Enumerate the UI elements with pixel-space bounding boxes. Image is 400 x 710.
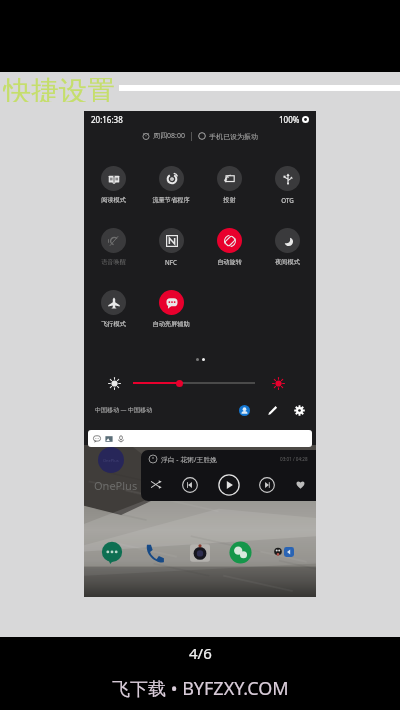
staticText: 中国移动 — 中国移动 (95, 406, 153, 414)
staticText: 投射 (223, 196, 236, 204)
staticText: 语音唤醒 (101, 258, 126, 266)
staticText: OnePlus (103, 458, 119, 463)
button[interactable]: 飞行模式 (84, 290, 142, 352)
button[interactable]: 自动旋转 (200, 228, 258, 290)
button[interactable]: 阅读模式 (84, 166, 142, 228)
staticText: 快捷设置 (3, 74, 115, 102)
staticText: 自动亮屏辅助 (152, 320, 190, 328)
button[interactable]: WeChat (229, 541, 252, 564)
staticText: 夜间模式 (275, 258, 300, 266)
button[interactable]: 语音唤醒 (84, 228, 142, 290)
button[interactable]: QQ (273, 547, 283, 557)
button[interactable]: Phone (143, 542, 165, 564)
button[interactable]: 自动亮屏辅助 (142, 290, 200, 352)
staticText: 飞行模式 (101, 320, 126, 328)
staticText: 周四08:00 (153, 131, 185, 141)
staticText: NFC (165, 258, 177, 266)
staticText: 飞下载 • BYFZXY.COM (112, 676, 289, 701)
button[interactable]: App shortcut (284, 547, 294, 557)
staticText: 03:01 / 04:28 (280, 456, 308, 462)
staticText: OnePlus (94, 478, 138, 493)
staticText: 4/6 (189, 643, 212, 663)
staticText: 浮白 - 花粥/王胜娩 (161, 455, 217, 464)
staticText: 阅读模式 (101, 196, 126, 204)
staticText: OTG (281, 196, 294, 204)
staticText: 手机已设为振动 (209, 132, 258, 141)
button[interactable]: NFC (142, 228, 200, 290)
button[interactable]: Camera (190, 543, 210, 563)
staticText: 自动旋转 (217, 258, 242, 266)
staticText: 100% (279, 114, 300, 125)
button[interactable]: 投射 (200, 166, 258, 228)
staticText: 流量节省程序 (152, 196, 190, 204)
button[interactable]: Messages (101, 542, 123, 564)
button[interactable]: OTG (258, 166, 316, 228)
button[interactable]: 流量节省程序 (142, 166, 200, 228)
button[interactable]: 夜间模式 (258, 228, 316, 290)
staticText: 20:16:38 (91, 114, 123, 125)
